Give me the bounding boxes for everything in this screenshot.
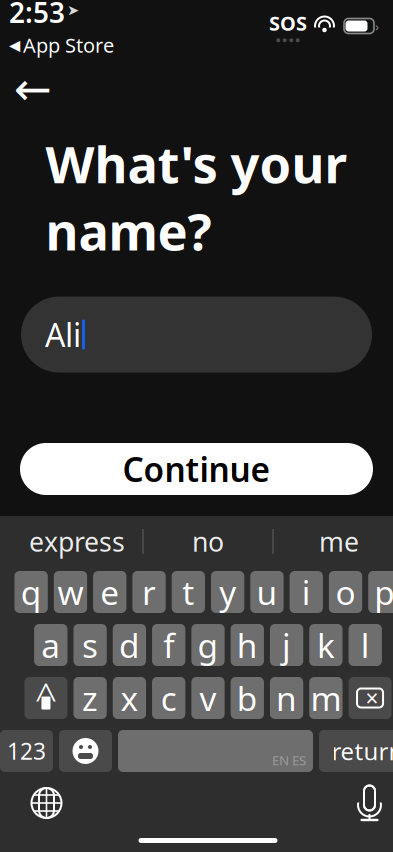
- staticText: ←: [14, 63, 52, 115]
- staticText: z: [82, 676, 98, 720]
- staticText: t: [182, 570, 194, 614]
- staticText: q: [21, 570, 42, 614]
- button[interactable]: space: [118, 730, 313, 772]
- button[interactable]: m: [309, 677, 342, 719]
- staticText: w: [57, 570, 83, 614]
- staticText: ➤: [67, 2, 79, 18]
- staticText: me: [319, 524, 359, 559]
- button[interactable]: ◀: [9, 32, 114, 58]
- button[interactable]: w: [54, 571, 87, 613]
- button[interactable]: Delete: [349, 677, 392, 719]
- button[interactable]: Back: [10, 66, 56, 112]
- button[interactable]: me: [273, 523, 393, 560]
- button[interactable]: Continue: [20, 443, 373, 495]
- staticText: h: [237, 623, 258, 667]
- button[interactable]: s: [73, 624, 107, 666]
- staticText: b: [237, 676, 258, 720]
- button[interactable]: Shift: [24, 677, 67, 719]
- staticText: y: [219, 570, 236, 614]
- button[interactable]: p: [368, 571, 393, 613]
- button[interactable]: h: [231, 624, 264, 666]
- button[interactable]: g: [191, 624, 225, 666]
- staticText: u: [256, 570, 277, 614]
- staticText: i: [302, 570, 311, 614]
- button[interactable]: Ali: [21, 297, 372, 373]
- staticText: s: [82, 623, 98, 667]
- staticText: f: [163, 623, 174, 667]
- staticText: r: [142, 570, 156, 614]
- staticText: d: [119, 623, 140, 667]
- button[interactable]: i: [290, 571, 323, 613]
- staticText: k: [317, 623, 335, 667]
- button[interactable]: r: [132, 571, 166, 613]
- button[interactable]: f: [152, 624, 185, 666]
- staticText: g: [197, 623, 218, 667]
- staticText: What's your name?: [45, 130, 347, 265]
- button[interactable]: Dictate: [344, 781, 393, 825]
- button[interactable]: n: [270, 677, 303, 719]
- staticText: c: [161, 676, 177, 720]
- staticText: 123: [7, 736, 46, 766]
- button[interactable]: o: [329, 571, 362, 613]
- button[interactable]: v: [191, 677, 225, 719]
- staticText: v: [199, 676, 216, 720]
- button[interactable]: b: [231, 677, 264, 719]
- staticText: l: [361, 623, 370, 667]
- staticText: 2:53: [9, 0, 65, 31]
- button[interactable]: x: [113, 677, 146, 719]
- button[interactable]: z: [73, 677, 107, 719]
- button[interactable]: express: [11, 523, 142, 560]
- button[interactable]: return: [319, 730, 393, 772]
- staticText: m: [310, 676, 341, 720]
- staticText: no: [192, 524, 224, 559]
- staticText: a: [41, 623, 60, 667]
- staticText: o: [335, 570, 355, 614]
- button[interactable]: d: [113, 624, 146, 666]
- staticText: x: [120, 676, 138, 720]
- button[interactable]: y: [211, 571, 244, 613]
- staticText: p: [374, 570, 393, 614]
- button[interactable]: a: [34, 624, 67, 666]
- button[interactable]: Emoji: [59, 730, 112, 772]
- staticText: Ali: [45, 313, 81, 356]
- staticText: j: [282, 623, 291, 667]
- button[interactable]: 123: [0, 730, 53, 772]
- button[interactable]: l: [349, 624, 382, 666]
- staticText: express: [29, 524, 125, 559]
- button[interactable]: q: [14, 571, 48, 613]
- button[interactable]: no: [143, 523, 272, 560]
- button[interactable]: e: [93, 571, 126, 613]
- staticText: EN ES: [272, 751, 306, 769]
- staticText: SOS: [269, 10, 307, 36]
- button[interactable]: c: [152, 677, 185, 719]
- button[interactable]: t: [172, 571, 205, 613]
- staticText: App Store: [23, 32, 114, 58]
- staticText: n: [276, 676, 297, 720]
- staticText: ›: [375, 17, 379, 35]
- button[interactable]: j: [270, 624, 303, 666]
- staticText: ^: [34, 670, 57, 723]
- button[interactable]: u: [250, 571, 284, 613]
- button[interactable]: Next keyboard: [21, 781, 71, 825]
- staticText: ◀: [9, 37, 20, 53]
- staticText: Continue: [122, 447, 270, 491]
- staticText: return: [331, 735, 393, 767]
- button[interactable]: k: [309, 624, 342, 666]
- staticText: e: [100, 570, 119, 614]
- staticText: ×: [366, 683, 379, 713]
